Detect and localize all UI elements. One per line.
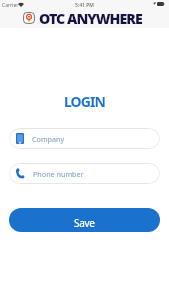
staticText: Phone number xyxy=(33,169,84,179)
staticText: Company xyxy=(32,134,65,144)
button[interactable]: Save xyxy=(9,208,160,232)
staticText: Save xyxy=(74,216,95,230)
button[interactable]: Company xyxy=(9,128,160,149)
staticText: 5:41 PM xyxy=(75,2,94,9)
staticText: OTC ANYWHERE xyxy=(39,9,142,28)
staticText: Carrier xyxy=(2,2,19,9)
staticText: LOGIN xyxy=(0,92,169,111)
button[interactable]: Phone number xyxy=(9,163,160,184)
